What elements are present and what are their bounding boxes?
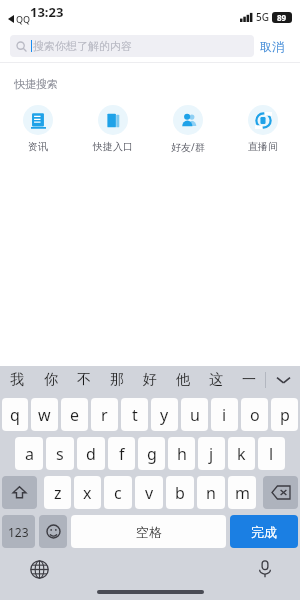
staticText: o: [250, 404, 260, 426]
staticText: 搜索你想了解的内容: [33, 39, 132, 53]
button[interactable]: z: [44, 476, 71, 509]
button[interactable]: u: [181, 398, 208, 431]
button[interactable]: i: [211, 398, 238, 431]
button[interactable]: Switch keyboard language: [26, 556, 52, 582]
staticText: n: [206, 482, 216, 504]
button[interactable]: 好: [133, 366, 166, 394]
button[interactable]: Backspace: [263, 476, 298, 509]
button[interactable]: h: [168, 437, 195, 470]
button[interactable]: 他: [166, 366, 199, 394]
button[interactable]: r: [91, 398, 118, 431]
staticText: 123: [8, 524, 29, 540]
staticText: 他: [176, 371, 190, 389]
button[interactable]: 这: [199, 366, 232, 394]
button[interactable]: q: [2, 398, 28, 431]
button[interactable]: 快捷入口: [75, 103, 150, 155]
button[interactable]: o: [241, 398, 268, 431]
staticText: i: [222, 404, 227, 426]
staticText: 取消: [260, 39, 284, 54]
button[interactable]: g: [138, 437, 165, 470]
staticText: q: [10, 404, 20, 426]
button[interactable]: 不: [67, 366, 100, 394]
staticText: m: [235, 482, 250, 504]
button[interactable]: w: [31, 398, 58, 431]
staticText: 快捷搜索: [14, 77, 58, 91]
button[interactable]: j: [198, 437, 225, 470]
staticText: 一: [242, 371, 256, 389]
button[interactable]: 直播间: [225, 103, 300, 155]
staticText: 你: [44, 371, 58, 389]
button[interactable]: 取消: [254, 35, 290, 58]
staticText: s: [56, 443, 64, 465]
staticText: z: [54, 482, 62, 504]
staticText: 空格: [136, 524, 162, 540]
button[interactable]: v: [135, 476, 163, 509]
button[interactable]: 你: [34, 366, 67, 394]
button[interactable]: Voice input: [252, 556, 278, 582]
staticText: j: [209, 443, 214, 465]
button[interactable]: 空格: [71, 515, 226, 548]
button[interactable]: d: [77, 437, 105, 470]
staticText: k: [237, 443, 246, 465]
staticText: g: [147, 443, 157, 465]
staticText: 那: [110, 371, 124, 389]
button[interactable]: 一: [232, 366, 265, 394]
staticText: 资讯: [28, 140, 48, 153]
button[interactable]: l: [258, 437, 285, 470]
staticText: x: [83, 482, 92, 504]
button[interactable]: y: [151, 398, 178, 431]
button[interactable]: s: [46, 437, 74, 470]
button[interactable]: b: [166, 476, 194, 509]
staticText: 不: [77, 371, 91, 389]
staticText: t: [132, 404, 138, 426]
staticText: l: [269, 443, 274, 465]
button[interactable]: 完成: [230, 515, 298, 548]
staticText: QQ: [16, 13, 31, 25]
staticText: b: [175, 482, 185, 504]
button[interactable]: n: [197, 476, 225, 509]
button[interactable]: e: [61, 398, 88, 431]
button[interactable]: f: [108, 437, 135, 470]
staticText: 完成: [251, 524, 277, 540]
button[interactable]: 123: [2, 515, 35, 548]
staticText: 直播间: [248, 140, 278, 153]
button[interactable]: a: [15, 437, 43, 470]
staticText: 好友/群: [171, 140, 205, 154]
staticText: w: [38, 404, 51, 426]
button[interactable]: p: [271, 398, 298, 431]
staticText: 快捷入口: [93, 140, 133, 153]
staticText: 我: [10, 371, 24, 389]
staticText: f: [119, 443, 125, 465]
staticText: a: [25, 443, 34, 465]
button[interactable]: x: [74, 476, 101, 509]
staticText: u: [190, 404, 200, 426]
button[interactable]: t: [121, 398, 148, 431]
button[interactable]: Collapse suggestions: [266, 366, 300, 394]
staticText: c: [114, 482, 122, 504]
staticText: 好: [143, 371, 157, 389]
staticText: v: [145, 482, 154, 504]
staticText: 5G: [256, 10, 269, 24]
staticText: p: [280, 404, 290, 426]
button[interactable]: 资讯: [0, 103, 75, 155]
button[interactable]: Emoji: [39, 515, 67, 548]
staticText: h: [177, 443, 187, 465]
button[interactable]: 搜索你想了解的内容: [10, 35, 254, 57]
staticText: y: [160, 404, 169, 426]
staticText: r: [101, 404, 108, 426]
button[interactable]: m: [228, 476, 256, 509]
button[interactable]: k: [228, 437, 255, 470]
button[interactable]: 那: [100, 366, 133, 394]
staticText: 13:23: [30, 3, 64, 21]
button[interactable]: 我: [0, 366, 34, 394]
button[interactable]: Shift: [2, 476, 37, 509]
button[interactable]: 好友/群: [150, 103, 225, 156]
staticText: e: [70, 404, 80, 426]
staticText: 这: [209, 371, 223, 389]
staticText: d: [86, 443, 96, 465]
staticText: 89: [277, 12, 287, 23]
button[interactable]: c: [104, 476, 132, 509]
